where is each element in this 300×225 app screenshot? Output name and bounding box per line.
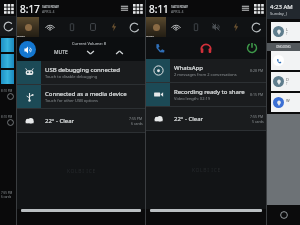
staticText: SATURDAY (42, 4, 60, 9)
staticText: 8:28 PM (250, 68, 264, 73)
button[interactable]: Current Volume: 8 (17, 37, 145, 61)
button[interactable]: 8:10 PM (0, 89, 16, 115)
staticText: 22° - Clear (45, 117, 75, 125)
button[interactable] (1, 70, 14, 84)
button[interactable]: Dial (152, 40, 168, 56)
button[interactable]: Volume down (85, 47, 96, 58)
staticText: CHOPI (146, 34, 154, 37)
staticText: 8:10 PM (1, 89, 13, 93)
button[interactable]: Mute (206, 17, 226, 37)
button[interactable]: 8:10 PM (0, 115, 16, 141)
staticText: CHOPI (17, 34, 25, 37)
staticText: Connected as a media device (45, 90, 127, 98)
button[interactable]: Volume up (114, 47, 125, 58)
button[interactable]: 22° - Clear (146, 107, 266, 130)
staticText: KOLBI ICE (192, 167, 221, 174)
staticText: 2 messages from 2 conversations (174, 72, 237, 77)
staticText: Recording ready to share (174, 88, 245, 96)
staticText: APRIL 4 (171, 9, 184, 14)
button[interactable]: USB debugging connected (17, 61, 145, 84)
button[interactable]: Wifi (39, 17, 61, 37)
button[interactable]: Wifi (166, 17, 186, 37)
button[interactable] (150, 209, 262, 212)
button[interactable]: Connected as a media device (17, 85, 145, 108)
staticText: L (286, 27, 289, 32)
staticText: 8:15 PM (250, 92, 264, 97)
staticText: 22° - Clear (174, 115, 204, 123)
staticText: Touch for other USB options (45, 98, 98, 103)
button[interactable] (21, 209, 141, 212)
staticText: MUTE (54, 49, 68, 56)
staticText: Video length: 02:19 (174, 96, 211, 101)
button[interactable]: Headset (198, 40, 214, 56)
button[interactable]: Sync (246, 17, 266, 37)
staticText: Sunday, J (270, 11, 287, 16)
staticText: T (286, 82, 288, 86)
other: Signal (120, 4, 129, 13)
button[interactable]: D (271, 72, 300, 91)
button[interactable]: Flash (103, 17, 124, 37)
staticText: T (286, 32, 288, 36)
staticText: 7:55 PM (1, 191, 13, 195)
button[interactable]: Power (244, 40, 260, 56)
button[interactable]: Avatar (17, 17, 39, 37)
button[interactable]: Flash (226, 17, 246, 37)
button[interactable]: L (271, 22, 300, 41)
button[interactable]: Battery (186, 17, 206, 37)
staticText: 8:17 (20, 2, 40, 16)
button[interactable] (271, 51, 300, 70)
other: Signal (241, 4, 250, 13)
staticText: D (286, 77, 289, 82)
staticText: 8:10 PM (1, 115, 13, 119)
button[interactable] (1, 38, 14, 52)
staticText: Current Volume: 8 (72, 41, 107, 46)
other: Apps (133, 4, 142, 13)
staticText: 4:23 AM (270, 3, 293, 11)
staticText: WhatsApp (174, 64, 203, 72)
button[interactable]: Avatar (146, 17, 166, 37)
button[interactable] (1, 54, 14, 68)
staticText: 6 cards (131, 121, 143, 126)
button[interactable]: Rotate (82, 17, 103, 37)
button[interactable]: 22° - Clear (17, 109, 145, 132)
staticText: 6 cards (1, 195, 12, 199)
staticText: KOLBI ICE (67, 168, 96, 175)
button[interactable]: W (271, 93, 300, 112)
staticText: 7:55 PM (129, 116, 143, 121)
staticText: ONGOING (276, 45, 291, 49)
staticText: SATURDAY (171, 4, 189, 9)
button[interactable]: WhatsApp (146, 59, 266, 82)
button[interactable]: Recording ready to share (146, 83, 266, 106)
staticText: USB debugging connected (45, 66, 120, 74)
button[interactable]: Sync (124, 17, 145, 37)
staticText: 8:11 (149, 2, 169, 16)
staticText: Touch to disable debugging (45, 74, 98, 79)
staticText: 5 cards (252, 119, 264, 124)
staticText: 7:55 PM (250, 114, 264, 119)
button[interactable]: Battery (61, 17, 82, 37)
staticText: APRIL 4 (42, 9, 55, 14)
staticText: W (286, 98, 290, 103)
other: Apps (254, 4, 263, 13)
